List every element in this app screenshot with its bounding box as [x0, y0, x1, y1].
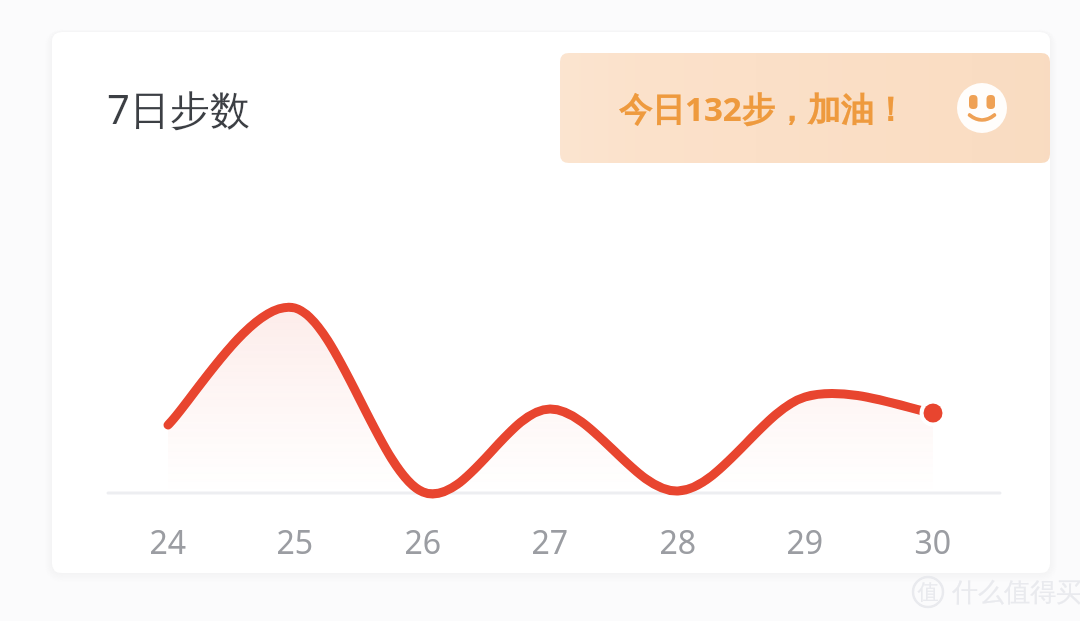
- button[interactable]: 今日132步，加油！: [560, 53, 1050, 163]
- button[interactable]: 7日步数图表: [52, 32, 1050, 573]
